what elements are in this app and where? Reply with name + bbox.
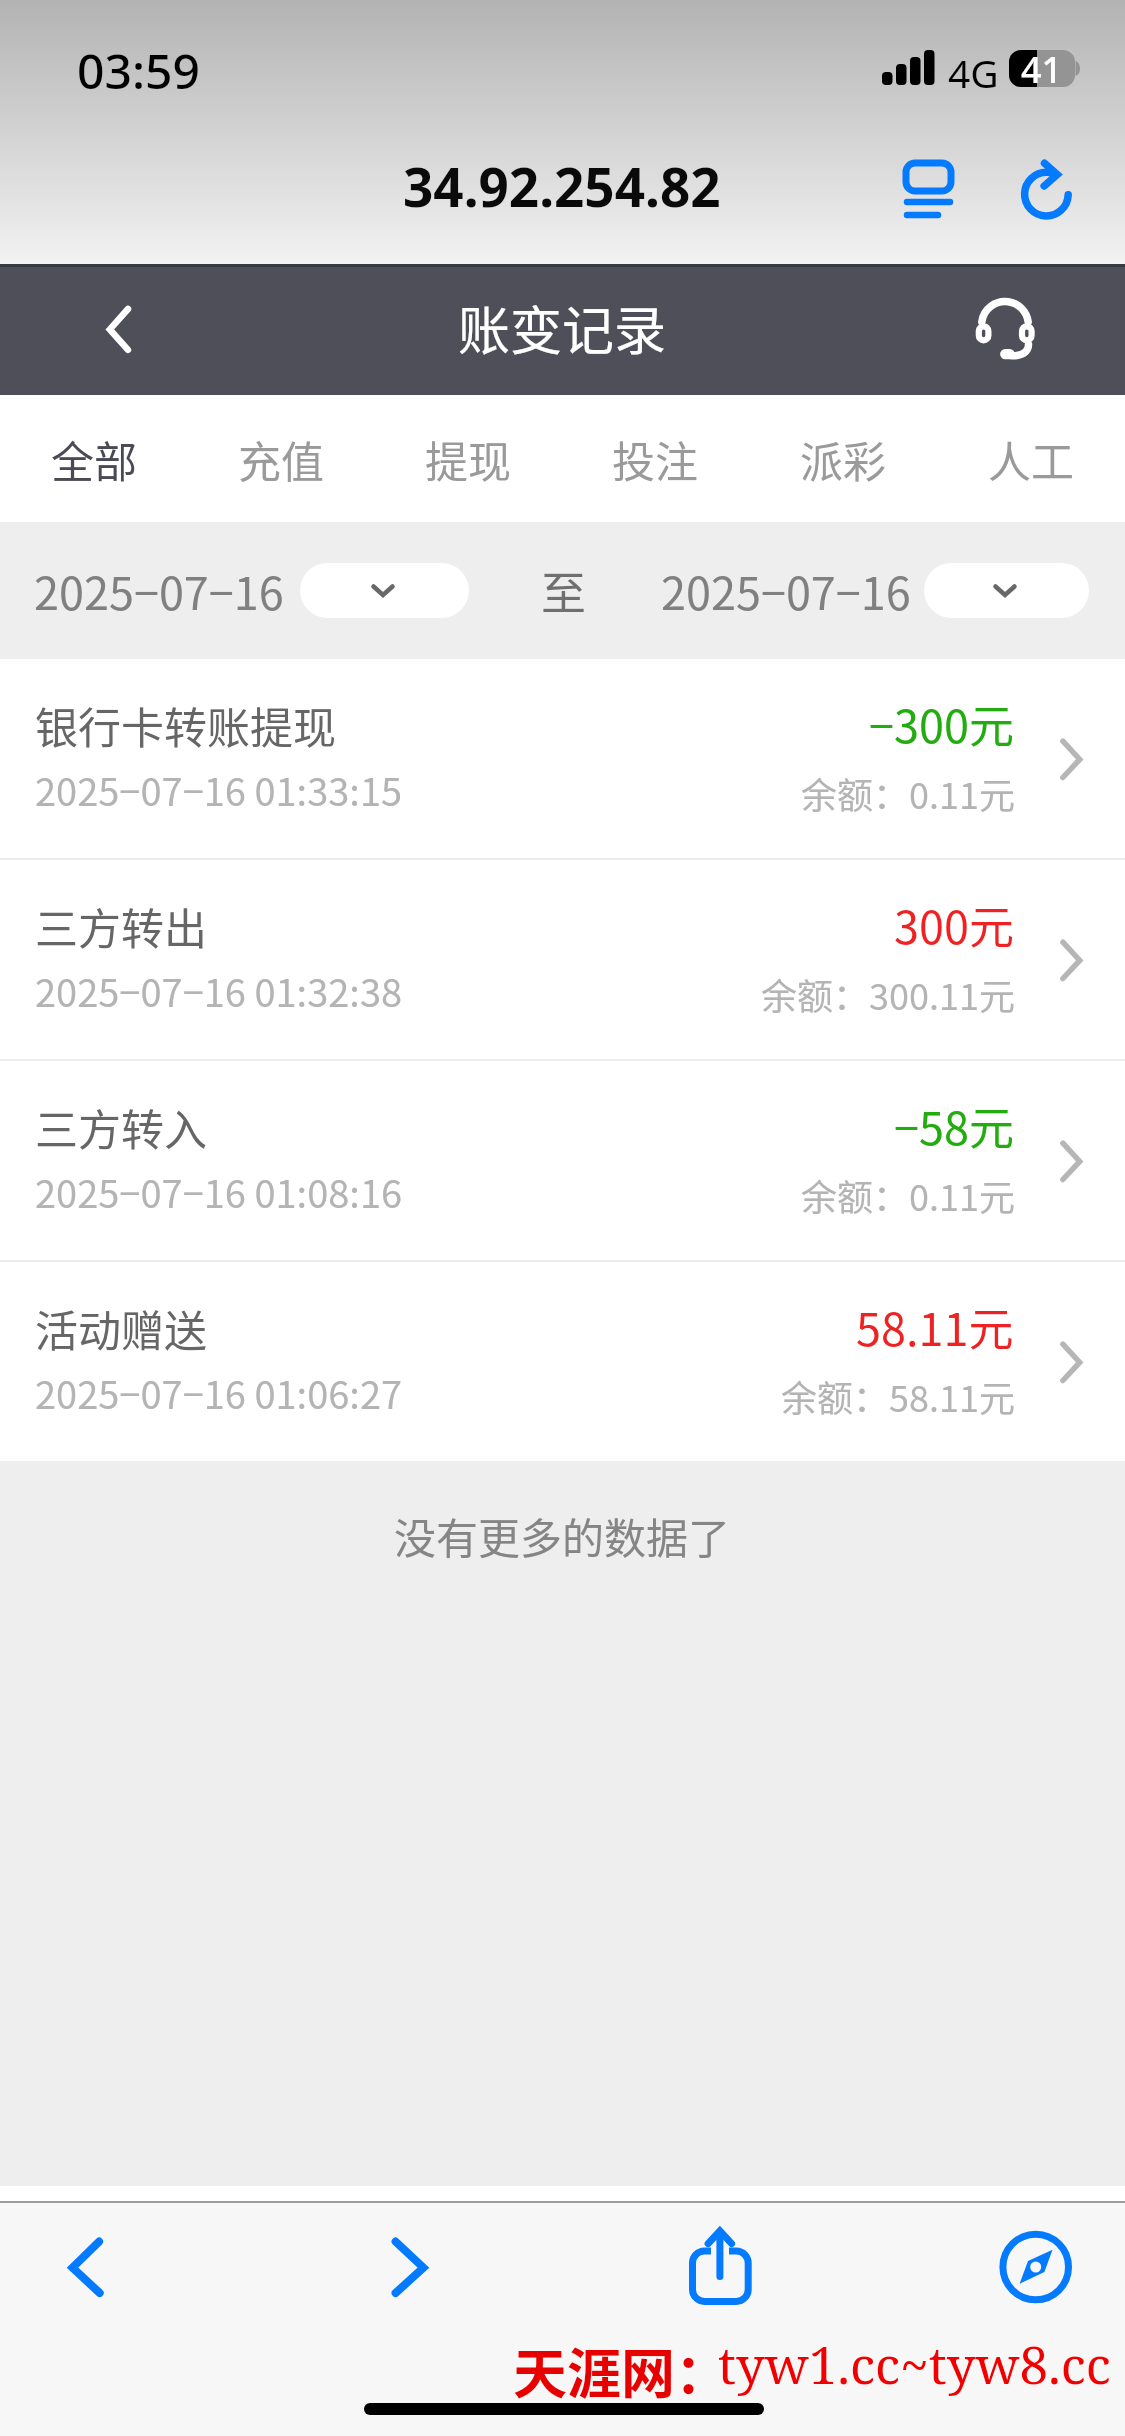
- staticText: 银行卡转账提现: [35, 694, 336, 756]
- staticText: 余额：300.11元: [761, 968, 1015, 1020]
- staticText: 2025−07−16 01:06:27: [35, 1365, 403, 1420]
- staticText: 全部: [51, 428, 137, 490]
- staticText: 三方转入: [35, 1096, 207, 1158]
- staticText: 4G: [948, 46, 999, 99]
- button[interactable]: Back: [42, 2211, 142, 2311]
- staticText: 2025−07−16: [34, 558, 284, 623]
- button[interactable]: Tabs: [986, 2211, 1086, 2311]
- staticText: 2025−07−16 01:33:15: [35, 762, 403, 817]
- button[interactable]: Pick start date: [300, 563, 469, 618]
- button[interactable]: 活动赠送: [0, 1262, 1125, 1461]
- button[interactable]: 银行卡转账提现: [0, 659, 1125, 858]
- button[interactable]: Customer service: [970, 270, 1090, 390]
- staticText: 人工: [988, 428, 1074, 490]
- staticText: 300元: [894, 892, 1014, 957]
- staticText: 03:59: [77, 38, 200, 103]
- button[interactable]: Share: [670, 2211, 770, 2311]
- staticText: 三方转出: [35, 895, 207, 957]
- staticText: 余额：58.11元: [781, 1370, 1015, 1422]
- staticText: 2025−07−16: [661, 558, 911, 623]
- staticText: tyw1.cc~tyw8.cc: [718, 2329, 1111, 2398]
- button[interactable]: 充值: [187, 395, 374, 522]
- staticText: 2025−07−16 01:08:16: [35, 1164, 403, 1219]
- staticText: 余额：0.11元: [801, 767, 1015, 819]
- staticText: 41: [1021, 45, 1063, 94]
- staticText: 天涯网：: [513, 2331, 729, 2409]
- button[interactable]: 人工: [937, 395, 1125, 522]
- staticText: 派彩: [800, 428, 886, 490]
- staticText: 提现: [425, 428, 511, 490]
- button[interactable]: 三方转入: [0, 1061, 1125, 1260]
- staticText: −300元: [869, 691, 1014, 756]
- button[interactable]: Pick end date: [924, 563, 1089, 618]
- button[interactable]: 三方转出: [0, 860, 1125, 1059]
- staticText: 账变记录: [458, 290, 667, 365]
- button[interactable]: Forward: [366, 2211, 466, 2311]
- staticText: 至: [541, 558, 587, 623]
- button[interactable]: Back: [70, 270, 190, 390]
- button[interactable]: 投注: [561, 395, 749, 522]
- button[interactable]: Refresh: [995, 143, 1095, 243]
- staticText: 34.92.254.82: [403, 150, 721, 222]
- button[interactable]: 派彩: [749, 395, 937, 522]
- staticText: −58元: [894, 1093, 1014, 1158]
- button[interactable]: 提现: [374, 395, 561, 522]
- staticText: 58.11元: [856, 1294, 1014, 1359]
- button[interactable]: 全部: [0, 395, 187, 522]
- staticText: 2025−07−16 01:32:38: [35, 963, 403, 1018]
- staticText: 没有更多的数据了: [394, 1505, 731, 1566]
- staticText: 投注: [612, 428, 698, 490]
- button[interactable]: Reader view: [878, 143, 978, 243]
- staticText: 充值: [238, 428, 324, 490]
- staticText: 活动赠送: [35, 1297, 207, 1359]
- staticText: 余额：0.11元: [801, 1169, 1015, 1221]
